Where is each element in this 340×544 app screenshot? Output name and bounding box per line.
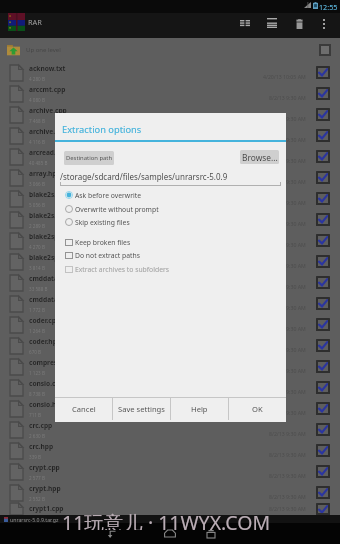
button[interactable]: blake2sp.hpp bbox=[0, 251, 340, 272]
staticText: Browse... bbox=[242, 152, 278, 163]
button[interactable]: cmddata.hpp bbox=[0, 293, 340, 314]
button[interactable]: blake2s.cpp bbox=[0, 188, 340, 209]
staticText: array.hpp bbox=[29, 169, 61, 178]
staticText: crypt.hpp bbox=[29, 484, 61, 493]
staticText: 8/2/13 9:30 AM bbox=[269, 304, 306, 311]
staticText: 8/2/13 9:30 AM bbox=[269, 472, 306, 479]
button[interactable]: coder.hpp bbox=[0, 335, 340, 356]
button[interactable]: Help bbox=[171, 398, 228, 420]
staticText: 2 552 B bbox=[29, 496, 45, 502]
button[interactable]: consio.hpp bbox=[0, 398, 340, 419]
staticText: 8/2/13 9:30 AM bbox=[269, 346, 306, 353]
staticText: blake2sp.hpp bbox=[29, 253, 73, 262]
staticText: archive.hpp bbox=[29, 127, 68, 136]
staticText: consio.cpp bbox=[29, 379, 64, 388]
button[interactable]: Do not extract paths bbox=[55, 248, 286, 262]
button[interactable]: Cancel bbox=[55, 398, 112, 420]
staticText: 8/2/13 9:30 AM bbox=[269, 115, 306, 122]
staticText: coder.cpp bbox=[29, 316, 61, 325]
button[interactable]: Overwrite without prompt bbox=[55, 202, 286, 216]
button[interactable]: compress.hpp bbox=[0, 356, 340, 377]
staticText: blake2s.cpp bbox=[29, 190, 68, 199]
button[interactable]: Sort bbox=[259, 10, 285, 35]
staticText: 8/2/13 9:30 AM bbox=[269, 367, 306, 374]
button[interactable]: archive.hpp bbox=[0, 125, 340, 146]
staticText: 5 056 B bbox=[29, 202, 45, 208]
staticText: coder.hpp bbox=[29, 337, 61, 346]
staticText: arcread.cpp bbox=[29, 148, 68, 157]
staticText: Overwrite without prompt bbox=[75, 205, 159, 214]
staticText: 40 485 B bbox=[29, 160, 48, 166]
button[interactable]: Keep broken files bbox=[55, 235, 286, 249]
staticText: 2 289 B bbox=[29, 223, 45, 229]
button[interactable]: Back bbox=[96, 523, 126, 544]
staticText: Help bbox=[191, 404, 208, 414]
button[interactable]: crypt.hpp bbox=[0, 482, 340, 503]
staticText: cmddata.hpp bbox=[29, 295, 73, 304]
button[interactable]: blake2s.hpp bbox=[0, 209, 340, 230]
button[interactable]: Delete bbox=[289, 11, 310, 36]
button[interactable]: OK bbox=[229, 398, 286, 420]
button[interactable]: Extract archives to subfolders bbox=[55, 262, 286, 276]
button[interactable]: archive.cpp bbox=[0, 104, 340, 125]
button[interactable]: Up one level bbox=[0, 38, 340, 62]
button[interactable]: crc.hpp bbox=[0, 440, 340, 461]
staticText: crc.hpp bbox=[29, 442, 54, 451]
staticText: 8/2/13 9:30 AM bbox=[269, 430, 306, 437]
staticText: Extraction options bbox=[62, 123, 142, 136]
staticText: Ask before overwrite bbox=[75, 191, 141, 200]
button[interactable]: array.hpp bbox=[0, 167, 340, 188]
staticText: 711 B bbox=[29, 412, 42, 418]
button[interactable]: arccmt.cpp bbox=[0, 83, 340, 104]
button[interactable]: Browse... bbox=[240, 150, 279, 164]
button[interactable]: consio.cpp bbox=[0, 377, 340, 398]
staticText: 2 577 B bbox=[29, 475, 45, 481]
button[interactable]: More options bbox=[314, 11, 333, 36]
staticText: 4 270 B bbox=[29, 244, 45, 250]
button[interactable]: acknow.txt bbox=[0, 62, 340, 83]
staticText: 1 123 B bbox=[29, 370, 45, 376]
staticText: Save settings bbox=[118, 404, 165, 414]
staticText: Keep broken files bbox=[75, 238, 131, 247]
button[interactable]: coder.cpp bbox=[0, 314, 340, 335]
staticText: Do not extract paths bbox=[75, 251, 140, 260]
button[interactable]: crc.cpp bbox=[0, 419, 340, 440]
staticText: 4 280 B bbox=[29, 76, 45, 82]
button[interactable]: Recent apps bbox=[196, 523, 226, 544]
button[interactable]: Ask before overwrite bbox=[55, 188, 286, 202]
staticText: 1 772 B bbox=[29, 307, 45, 313]
staticText: 3 814 B bbox=[29, 265, 45, 271]
staticText: consio.hpp bbox=[29, 400, 65, 409]
staticText: archive.cpp bbox=[29, 106, 67, 115]
staticText: unrarsrc-5.0.9.tar.gz bbox=[10, 516, 59, 523]
staticText: 8/2/13 9:30 AM bbox=[269, 178, 306, 185]
staticText: 4 116 B bbox=[29, 139, 45, 145]
button[interactable]: Detail view bbox=[232, 11, 258, 36]
button[interactable]: arcread.cpp bbox=[0, 146, 340, 167]
staticText: 11玩意儿 · 11WYX.COM bbox=[62, 509, 271, 530]
staticText: Extract archives to subfolders bbox=[75, 265, 170, 274]
staticText: 8/2/13 9:30 AM bbox=[269, 94, 306, 101]
staticText: 2 630 B bbox=[29, 433, 45, 439]
staticText: 1 264 B bbox=[29, 328, 45, 334]
staticText: 33 588 B bbox=[29, 286, 48, 292]
staticText: Skip existing files bbox=[75, 218, 130, 227]
button[interactable]: Skip existing files bbox=[55, 215, 286, 229]
staticText: 12:55 bbox=[319, 2, 338, 12]
staticText: 339 B bbox=[29, 454, 42, 460]
button[interactable]: crypt1.cpp bbox=[0, 503, 340, 515]
button[interactable]: Save settings bbox=[113, 398, 170, 420]
staticText: OK bbox=[252, 404, 263, 414]
button[interactable]: cmddata.cpp bbox=[0, 272, 340, 293]
staticText: /storage/sdcard/files/samples/unrarsrc-5… bbox=[60, 171, 228, 182]
staticText: 8/2/13 9:30 AM bbox=[269, 283, 306, 290]
staticText: 8/2/13 9:30 AM bbox=[269, 262, 306, 269]
staticText: 8/2/13 9:30 AM bbox=[269, 199, 306, 206]
staticText: 8/2/13 9:30 AM bbox=[269, 505, 306, 512]
button[interactable]: Destination path bbox=[64, 151, 114, 165]
staticText: 8/2/13 9:30 AM bbox=[269, 409, 306, 416]
staticText: 8/2/13 9:30 AM bbox=[269, 220, 306, 227]
button[interactable]: blake2sp.cpp bbox=[0, 230, 340, 251]
button[interactable]: crypt.cpp bbox=[0, 461, 340, 482]
button[interactable]: Home bbox=[155, 523, 185, 544]
